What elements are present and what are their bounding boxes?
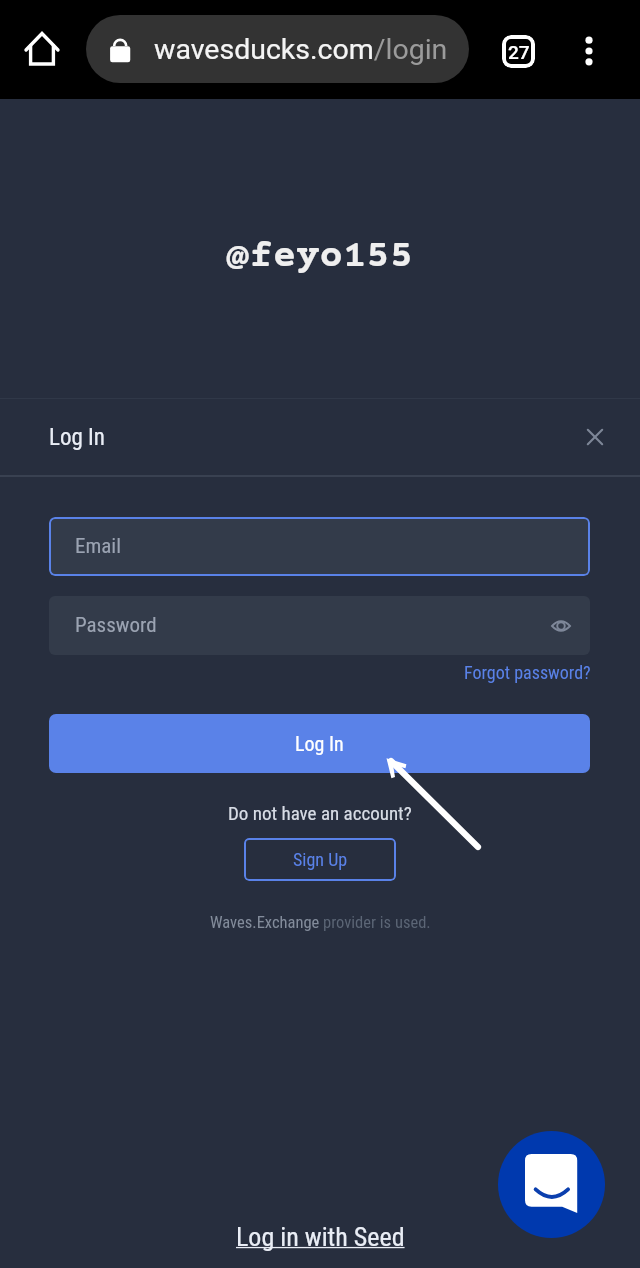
staticText: Log In (49, 424, 105, 451)
staticText: wavesducks.com/login (154, 33, 448, 66)
button[interactable]: Tabs (487, 20, 549, 82)
staticText: Sign Up (293, 849, 348, 870)
button[interactable]: Log In (49, 714, 590, 773)
button[interactable]: Home (13, 20, 71, 78)
staticText: 27 (508, 41, 530, 63)
button[interactable]: Close (570, 412, 620, 462)
staticText: Password (75, 613, 157, 638)
button[interactable]: Log in with Seed (236, 1222, 405, 1252)
button[interactable]: More options (558, 20, 620, 82)
button[interactable]: Sign Up (244, 838, 396, 881)
staticText: Do not have an account? (228, 802, 412, 824)
button[interactable]: wavesducks.com/login (86, 15, 469, 83)
button[interactable]: Show password (544, 609, 578, 643)
staticText: Email (75, 534, 121, 559)
button[interactable]: Forgot password? (464, 660, 591, 685)
button[interactable]: Password (49, 596, 590, 655)
staticText: Waves.Exchange provider is used. (210, 913, 431, 932)
button[interactable]: Email (49, 517, 590, 576)
button[interactable]: Open chat (498, 1131, 605, 1238)
staticText: Log In (295, 732, 344, 755)
staticText: @feyo155 (226, 236, 414, 280)
